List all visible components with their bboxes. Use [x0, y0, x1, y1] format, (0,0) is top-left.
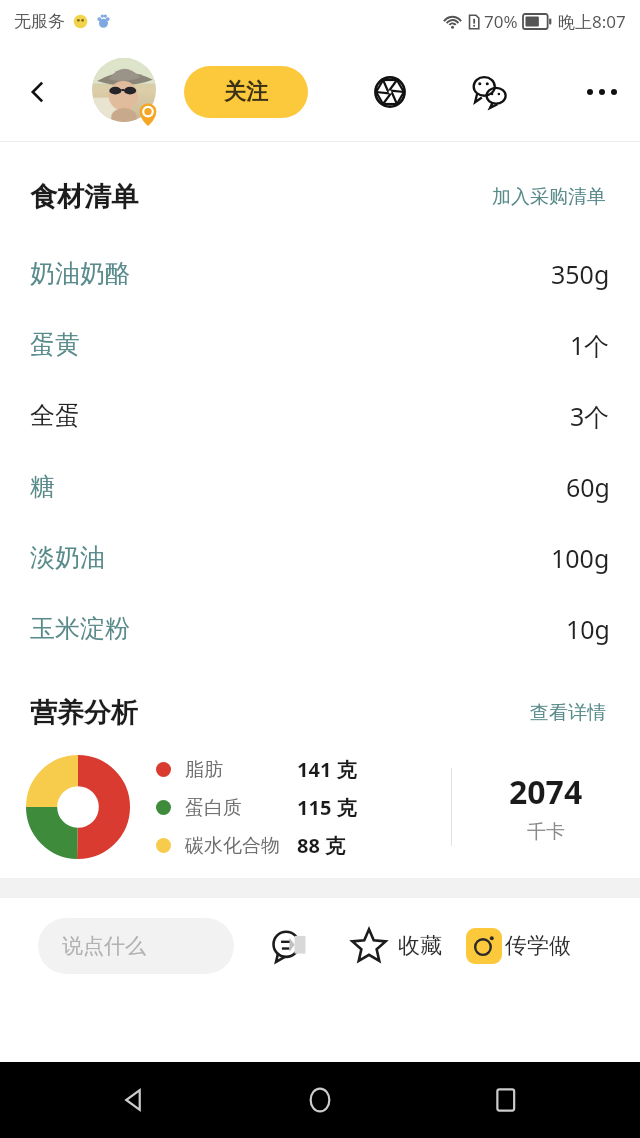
staticText: 蛋白质	[185, 796, 242, 820]
button[interactable]: Comments	[264, 918, 320, 974]
button[interactable]: 蛋黄	[0, 309, 640, 380]
staticText: 加入采购清单	[492, 185, 606, 209]
button[interactable]: 加入采购清单	[488, 181, 610, 213]
button[interactable]: User profile	[92, 58, 160, 126]
staticText: 无服务	[14, 11, 65, 32]
button[interactable]: Recent apps	[482, 1076, 530, 1124]
staticText: 查看详情	[530, 701, 606, 725]
staticText: 晚上8:07	[558, 10, 626, 33]
staticText: 碳水化合物	[185, 834, 280, 858]
staticText: 100g	[551, 541, 610, 575]
staticText: 奶油奶酪	[30, 258, 130, 289]
staticText: 10g	[566, 612, 610, 646]
staticText: 说点什么	[62, 933, 146, 959]
button[interactable]: 收藏	[344, 919, 448, 973]
button[interactable]: 全蛋	[0, 380, 640, 451]
staticText: 1个	[570, 328, 610, 362]
staticText: 营养分析	[30, 696, 138, 730]
staticText: 关注	[224, 78, 268, 106]
staticText: 蛋黄	[30, 329, 80, 360]
button[interactable]: 查看详情	[526, 697, 610, 729]
button[interactable]: Home	[296, 1076, 344, 1124]
button[interactable]: 玉米淀粉	[0, 593, 640, 664]
staticText: 淡奶油	[30, 542, 105, 573]
staticText: 千卡	[527, 820, 565, 844]
staticText: 脂肪	[185, 758, 223, 782]
staticText: 350g	[551, 257, 610, 291]
staticText: 2074	[509, 770, 583, 814]
staticText: 收藏	[398, 932, 442, 960]
button[interactable]: 传学做	[462, 920, 575, 972]
button[interactable]: 说点什么	[38, 918, 234, 974]
staticText: 全蛋	[30, 400, 80, 431]
button[interactable]: 奶油奶酪	[0, 238, 640, 309]
staticText: 食材清单	[30, 180, 138, 214]
button[interactable]: Back	[110, 1076, 158, 1124]
staticText: 3个	[570, 399, 610, 433]
staticText: 88 克	[297, 832, 346, 859]
button[interactable]: More options	[574, 64, 630, 120]
button[interactable]: Camera	[362, 64, 418, 120]
button[interactable]: 淡奶油	[0, 522, 640, 593]
staticText: 141 克	[297, 756, 357, 783]
button[interactable]: 糖	[0, 451, 640, 522]
button[interactable]: Back	[14, 68, 62, 116]
button[interactable]: 关注	[184, 66, 308, 118]
staticText: 糖	[30, 471, 55, 502]
staticText: 115 克	[297, 794, 357, 821]
button[interactable]: Share to WeChat	[462, 64, 518, 120]
staticText: 60g	[566, 470, 610, 504]
staticText: 传学做	[505, 932, 571, 960]
staticText: 玉米淀粉	[30, 613, 130, 644]
staticText: 70%	[484, 10, 518, 33]
